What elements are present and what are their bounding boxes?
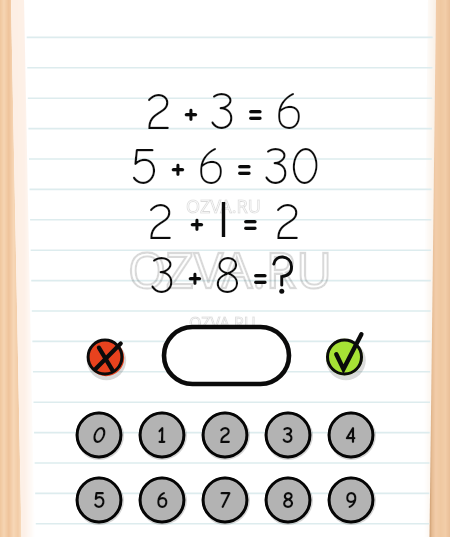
button[interactable]: 9 <box>326 475 376 525</box>
button[interactable]: 2 <box>200 410 250 460</box>
staticText: 5 <box>93 486 106 514</box>
staticText: 6 <box>197 137 225 197</box>
staticText: + <box>183 92 199 133</box>
staticText: 0 <box>92 421 106 449</box>
button[interactable]: Submit answer <box>320 326 372 378</box>
button[interactable]: Answer field <box>160 323 293 391</box>
staticText: 8 <box>282 486 295 514</box>
staticText: 2 <box>147 192 174 252</box>
staticText: = <box>236 147 253 188</box>
button[interactable]: 5 <box>74 475 124 525</box>
staticText: = <box>247 92 264 133</box>
staticText: + <box>189 202 205 243</box>
staticText: 8 <box>214 246 241 306</box>
staticText: + <box>170 147 186 188</box>
button[interactable]: 6 <box>137 475 187 525</box>
staticText: = <box>242 202 259 243</box>
staticText: 3 <box>150 246 176 306</box>
button[interactable]: 8 <box>263 475 313 525</box>
staticText: 4 <box>345 421 357 449</box>
button[interactable]: Clear answer <box>81 333 131 383</box>
staticText: + <box>187 256 203 297</box>
button[interactable]: 0 <box>74 410 124 460</box>
staticText: 5 <box>130 137 159 197</box>
staticText: OZVA.RU <box>128 236 332 303</box>
staticText: OZVA.RU <box>186 194 261 219</box>
staticText: 3 <box>282 421 294 449</box>
button[interactable]: 4 <box>326 410 376 460</box>
staticText: 30 <box>264 137 321 197</box>
staticText: 2 <box>145 82 172 142</box>
staticText: 2 <box>219 421 231 449</box>
staticText: 6 <box>275 82 303 142</box>
staticText: OZVA.RU <box>189 312 256 334</box>
staticText: = <box>252 256 269 297</box>
staticText: 7 <box>220 486 231 514</box>
staticText: 6 <box>156 486 169 514</box>
button[interactable]: 3 <box>263 410 313 460</box>
button[interactable]: 1 <box>137 410 187 460</box>
staticText: 9 <box>345 486 358 514</box>
staticText: 3 <box>210 82 236 142</box>
staticText: 1 <box>157 421 167 449</box>
staticText: 2 <box>274 192 301 252</box>
button[interactable]: 7 <box>200 475 250 525</box>
